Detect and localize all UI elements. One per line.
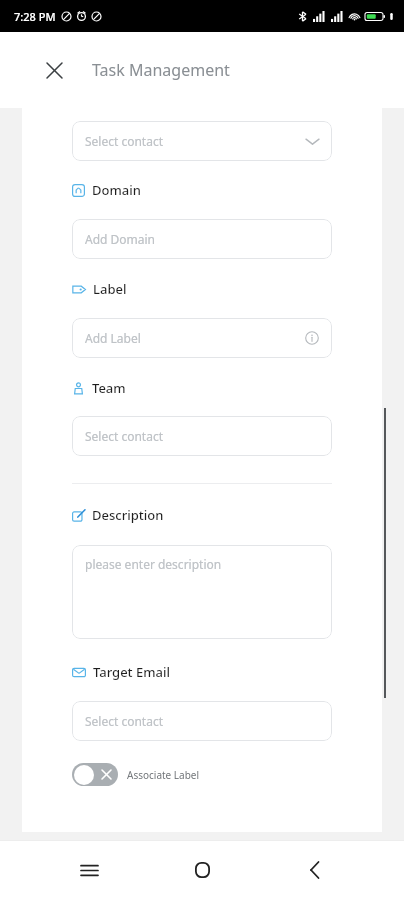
staticText: Add Label [85, 330, 141, 346]
button[interactable]: Select contact [72, 121, 332, 161]
staticText: Select contact [85, 133, 164, 149]
button[interactable]: Close [38, 54, 70, 86]
staticText: Description [92, 506, 164, 524]
staticText: 7:28 PM [14, 9, 56, 24]
staticText: Domain [92, 181, 141, 199]
staticText: Add Domain [85, 231, 156, 247]
staticText: Task Management [92, 59, 230, 81]
staticText: Team [92, 379, 126, 397]
button[interactable]: Home [178, 846, 226, 894]
button[interactable]: Select contact [72, 701, 332, 741]
staticText: Label [93, 280, 127, 298]
button[interactable]: Select contact [72, 416, 332, 456]
staticText: Select contact [85, 713, 164, 729]
button[interactable]: Add Label [72, 318, 332, 358]
button[interactable]: Back [291, 846, 339, 894]
staticText: Select contact [85, 428, 164, 444]
staticText: Target Email [93, 663, 170, 681]
button[interactable]: Add Domain [72, 219, 332, 259]
staticText: please enter description [85, 556, 222, 572]
button[interactable]: Associate Label [72, 763, 200, 786]
button[interactable]: please enter description [72, 545, 332, 639]
staticText: Associate Label [127, 768, 200, 782]
button[interactable]: Recent apps [65, 846, 113, 894]
